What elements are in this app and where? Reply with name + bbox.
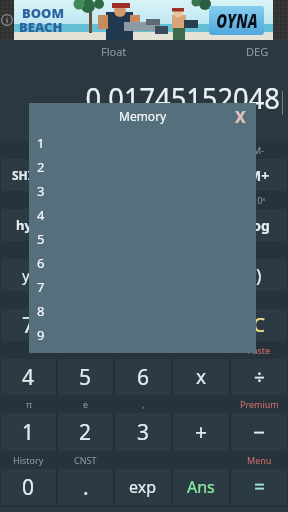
button[interactable]: 0: [1, 469, 56, 505]
other: Ad info: [0, 0, 14, 40]
button[interactable]: 7: [37, 275, 256, 299]
staticText: x: [196, 364, 207, 390]
staticText: 6: [37, 254, 45, 272]
staticText: π: [26, 398, 32, 410]
button[interactable]: 6: [37, 251, 256, 275]
button[interactable]: 6: [115, 359, 171, 395]
button[interactable]: 3: [115, 413, 171, 451]
staticText: C: [253, 312, 266, 338]
staticText: ÷: [254, 364, 265, 390]
staticText: log: [248, 216, 270, 235]
staticText: BEACH: [19, 18, 63, 36]
button[interactable]: 5: [37, 227, 256, 251]
button[interactable]: 8: [37, 299, 256, 323]
staticText: BOOM: [22, 4, 65, 22]
staticText: 7: [37, 278, 45, 296]
button[interactable]: Ans: [173, 469, 229, 505]
staticText: 4: [22, 363, 35, 392]
button[interactable]: exp: [115, 469, 171, 505]
button[interactable]: OYNA: [209, 6, 264, 35]
button[interactable]: 5: [58, 359, 113, 395]
staticText: 0: [22, 473, 35, 502]
staticText: 2: [37, 158, 45, 176]
button[interactable]: +: [173, 413, 229, 451]
staticText: 7: [22, 311, 35, 340]
staticText: X: [235, 106, 246, 128]
button[interactable]: Close: [224, 103, 256, 131]
staticText: −: [253, 418, 266, 447]
button[interactable]: DEG: [232, 40, 283, 62]
button[interactable]: 3: [37, 179, 256, 203]
button[interactable]: hyp: [1, 209, 56, 241]
button[interactable]: 2: [58, 413, 113, 451]
staticText: 4: [37, 206, 45, 224]
staticText: 9: [37, 326, 45, 344]
button[interactable]: 1: [37, 131, 256, 155]
button[interactable]: x: [173, 359, 229, 395]
button[interactable]: log: [231, 209, 287, 241]
button[interactable]: M+: [231, 159, 287, 191]
staticText: ,: [142, 398, 145, 410]
button[interactable]: ÷: [231, 359, 287, 395]
staticText: M+: [248, 166, 270, 185]
button[interactable]: 9: [37, 323, 256, 347]
staticText: Float: [101, 44, 127, 59]
button[interactable]: 7: [1, 309, 56, 341]
staticText: 5: [37, 230, 45, 248]
staticText: 1: [22, 418, 35, 447]
staticText: 1: [37, 134, 45, 152]
button[interactable]: SHIFT: [1, 159, 56, 191]
staticText: ): [256, 263, 262, 288]
staticText: 10ˣ: [252, 194, 266, 206]
staticText: 3: [137, 418, 150, 447]
staticText: SHIFT: [12, 167, 46, 183]
staticText: OYNA: [210, 7, 264, 34]
staticText: 6: [137, 363, 150, 392]
button[interactable]: =: [231, 469, 287, 505]
staticText: Paste: [247, 344, 271, 356]
button[interactable]: .: [58, 469, 113, 505]
button[interactable]: C: [231, 309, 287, 341]
button[interactable]: 2: [37, 155, 256, 179]
button[interactable]: Ad info: [0, 0, 288, 40]
staticText: History: [13, 454, 44, 466]
button[interactable]: −: [231, 413, 287, 451]
staticText: Premium: [240, 398, 279, 410]
button[interactable]: 4: [37, 203, 256, 227]
staticText: +: [195, 418, 208, 447]
staticText: 5: [79, 363, 92, 392]
staticText: exp: [129, 476, 157, 498]
button[interactable]: Float: [86, 40, 142, 62]
staticText: Memory: [119, 108, 167, 124]
staticText: 2: [79, 418, 92, 447]
button[interactable]: ): [231, 259, 287, 291]
button[interactable]: 1: [1, 413, 56, 451]
button[interactable]: yˣ: [1, 259, 56, 291]
button[interactable]: 4: [1, 359, 56, 395]
